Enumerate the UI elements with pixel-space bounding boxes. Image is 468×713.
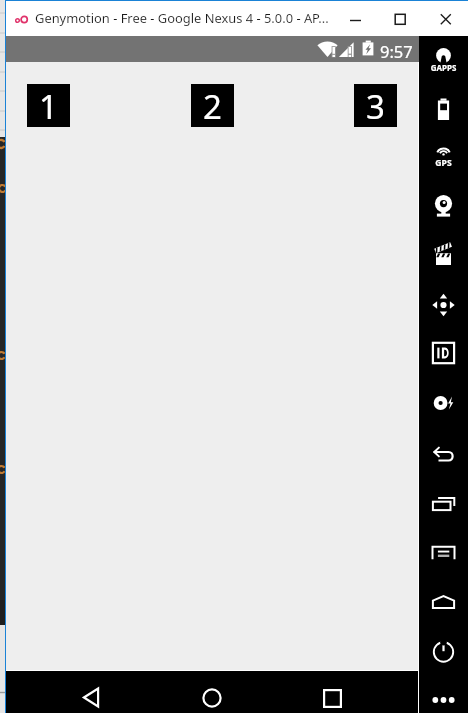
staticText: 3 [366, 84, 385, 127]
staticText: 2 [203, 84, 222, 127]
button[interactable]: 3 [354, 84, 397, 127]
button[interactable]: Disk IO [419, 379, 468, 428]
button[interactable]: Maximize [376, 1, 422, 35]
button[interactable]: Screen record [419, 232, 468, 281]
button[interactable]: Back [419, 428, 468, 477]
button[interactable]: Home [419, 575, 468, 624]
button[interactable]: GPS [419, 134, 468, 183]
button[interactable]: 2 [191, 84, 234, 127]
button[interactable]: Battery [419, 85, 468, 134]
button[interactable]: Minimize [330, 1, 376, 35]
button[interactable]: More [419, 673, 468, 700]
button[interactable]: Camera [419, 183, 468, 232]
staticText: GPS [419, 157, 468, 169]
staticText: Genymotion - Free - Google Nexus 4 - 5.0… [35, 9, 329, 27]
staticText: GAPPS [419, 62, 468, 73]
button[interactable]: Accelerometer [419, 281, 468, 330]
button[interactable]: Identifiers [419, 330, 468, 379]
button[interactable]: Recent apps [419, 477, 468, 526]
button[interactable]: Recents [302, 671, 375, 713]
button[interactable]: Home [182, 671, 255, 713]
button[interactable]: Close [422, 1, 468, 35]
staticText: 9:57 [380, 40, 413, 62]
button[interactable]: GAPPS [419, 36, 468, 85]
button[interactable]: Power [419, 624, 468, 673]
button[interactable]: Back [61, 671, 134, 713]
button[interactable]: Menu [419, 526, 468, 575]
staticText: 1 [39, 84, 58, 127]
button[interactable]: 1 [27, 84, 70, 127]
